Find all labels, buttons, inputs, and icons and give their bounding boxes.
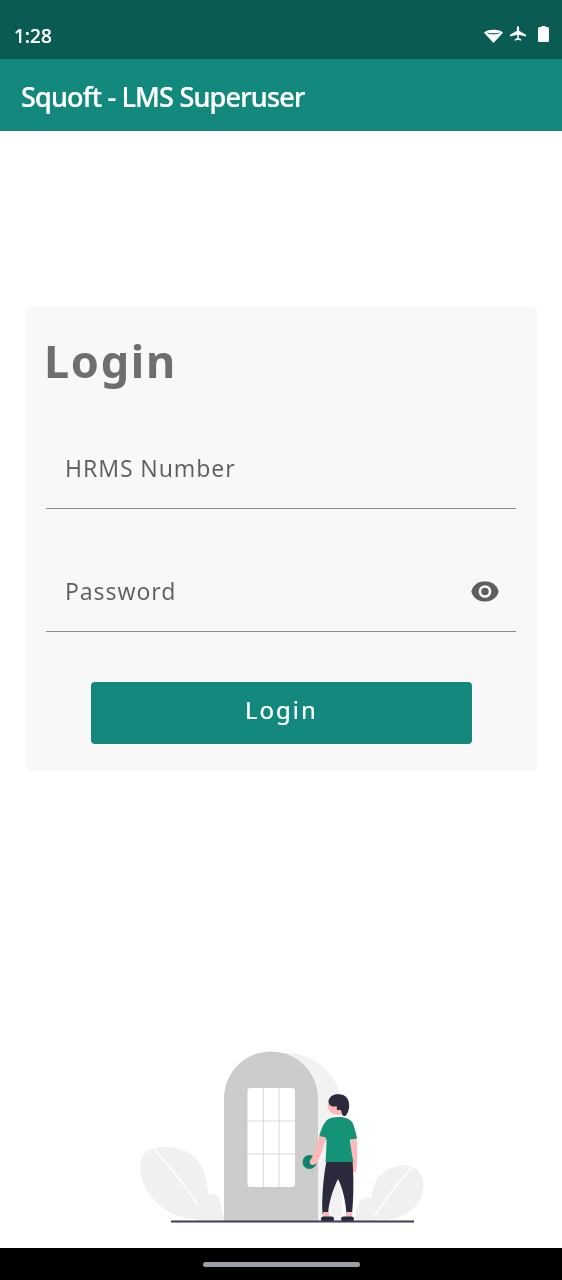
button[interactable]: Login [91,682,472,744]
staticText: Login [245,693,318,726]
staticText: Squoft - LMS Superuser [21,78,305,115]
button[interactable]: Show password [463,569,507,613]
staticText: HRMS Number [65,452,236,483]
staticText: Password [65,575,177,606]
staticText: 1:28 [14,23,52,49]
staticText: Login [44,330,177,391]
